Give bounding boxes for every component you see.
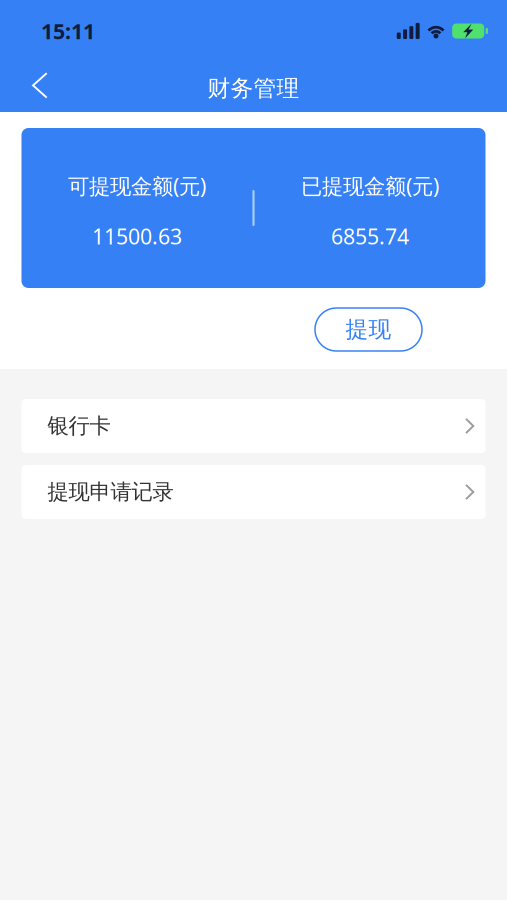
staticText: 可提现金额(元) <box>68 172 206 200</box>
staticText: 6855.74 <box>331 222 409 250</box>
staticText: 财务管理 <box>207 75 299 102</box>
button[interactable]: 提现 <box>315 308 422 351</box>
button[interactable]: 银行卡 <box>21 399 485 453</box>
button[interactable]: Back <box>0 64 80 112</box>
staticText: 11500.63 <box>92 222 182 250</box>
staticText: 银行卡 <box>47 413 110 439</box>
staticText: 已提现金额(元) <box>301 172 439 200</box>
staticText: 提现申请记录 <box>47 479 173 505</box>
button[interactable]: 提现申请记录 <box>21 465 485 519</box>
staticText: 提现 <box>345 316 391 343</box>
staticText: 15:11 <box>41 17 95 45</box>
